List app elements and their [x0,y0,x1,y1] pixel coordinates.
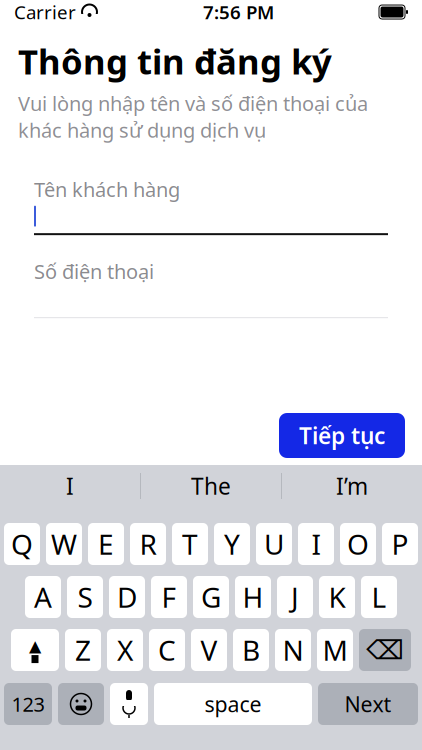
staticText: Tên khách hàng [34,176,180,202]
staticText: Vui lòng nhập tên và số điện thoại của k… [18,90,368,143]
staticText: C [158,631,176,669]
staticText: J [291,578,299,616]
button[interactable]: V [191,629,227,671]
staticText: H [242,578,263,616]
button[interactable]: H [235,576,271,618]
staticText: D [117,578,137,616]
button[interactable]: Y [214,523,250,565]
button[interactable]: N [275,629,311,671]
staticText: I [66,471,74,501]
staticText: ▲ [29,637,41,655]
button[interactable]: K [319,576,355,618]
staticText: E [98,525,114,563]
button[interactable]: O [340,523,376,565]
button[interactable]: 123 [4,683,52,725]
staticText: Z [75,631,91,669]
button[interactable]: P [382,523,418,565]
button[interactable]: Delete [359,629,411,671]
staticText: 7:56 PM [203,0,274,24]
button[interactable]: The [141,465,281,507]
staticText: O [347,525,369,563]
staticText: ⌫ [366,635,404,665]
staticText: Carrier [14,0,76,24]
button[interactable]: G [193,576,229,618]
staticText: I’m [336,471,368,501]
button[interactable]: X [107,629,143,671]
staticText: N [282,631,303,669]
button[interactable]: A [25,576,61,618]
staticText: V [200,631,217,669]
staticText: R [139,525,156,563]
button[interactable]: I [298,523,334,565]
staticText: Thông tin đăng ký [18,38,332,84]
button[interactable]: F [151,576,187,618]
staticText: Tiếp tục [299,420,385,450]
staticText: F [161,578,176,616]
button[interactable]: J [277,576,313,618]
button[interactable]: R [130,523,166,565]
staticText: G [201,578,221,616]
button[interactable]: D [109,576,145,618]
button[interactable]: L [361,576,397,618]
button[interactable]: C [149,629,185,671]
staticText: X [117,631,133,669]
staticText: T [182,525,198,563]
button[interactable]: Tiếp tục [279,413,405,458]
staticText: M [322,631,347,669]
button[interactable]: S [67,576,103,618]
staticText: Số điện thoại [34,258,154,284]
button[interactable]: Z [65,629,101,671]
button[interactable]: W [46,523,82,565]
staticText: S [77,578,92,616]
staticText: B [242,631,260,669]
staticText: W [51,525,77,563]
staticText: 123 [11,691,44,717]
button[interactable]: T [172,523,208,565]
button[interactable]: space [154,683,312,725]
staticText: space [204,690,261,718]
button[interactable]: I [0,465,140,507]
button[interactable]: Next [318,683,418,725]
staticText: The [191,471,231,501]
staticText: K [328,578,345,616]
button[interactable]: E [88,523,124,565]
staticText: I [311,525,320,563]
button[interactable]: Dictation [110,683,148,725]
staticText: A [34,578,52,616]
button[interactable]: Emoji [58,683,104,725]
button[interactable]: I’m [282,465,422,507]
staticText: L [371,578,386,616]
staticText: Q [11,525,33,563]
staticText: U [264,525,284,563]
button[interactable]: M [317,629,353,671]
staticText: P [391,525,408,563]
button[interactable]: B [233,629,269,671]
button[interactable]: U [256,523,292,565]
button[interactable]: Shift [11,629,59,671]
button[interactable]: Q [4,523,40,565]
staticText: Next [344,690,391,718]
staticText: Y [224,525,240,563]
